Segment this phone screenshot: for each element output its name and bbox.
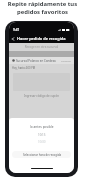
staticText: lo antes posible	[30, 125, 54, 129]
button[interactable]: Back	[9, 34, 17, 43]
staticText: 9:41	[13, 28, 20, 32]
staticText: Hoy, hasta 4:00 PM	[12, 66, 36, 70]
staticText: Recoger en otra sucursal	[9, 45, 74, 49]
button[interactable]: Seleccionar hora de recogida	[12, 151, 71, 158]
staticText: Hacer pedido de recogida	[17, 36, 66, 41]
button[interactable]: Sucursal Polanco en Condesa	[12, 57, 71, 64]
staticText: 10:15	[38, 133, 46, 137]
staticText: Cambiar	[61, 59, 71, 62]
staticText: Seleccionar hora de recogida	[23, 153, 61, 157]
staticText: Ingresar código de cupón	[9, 94, 74, 98]
staticText: Sucursal Polanco en Condesa	[16, 59, 56, 63]
staticText: Repite rápidamente tus pedidos favoritos	[0, 0, 85, 16]
staticText: 10:30	[38, 140, 46, 144]
